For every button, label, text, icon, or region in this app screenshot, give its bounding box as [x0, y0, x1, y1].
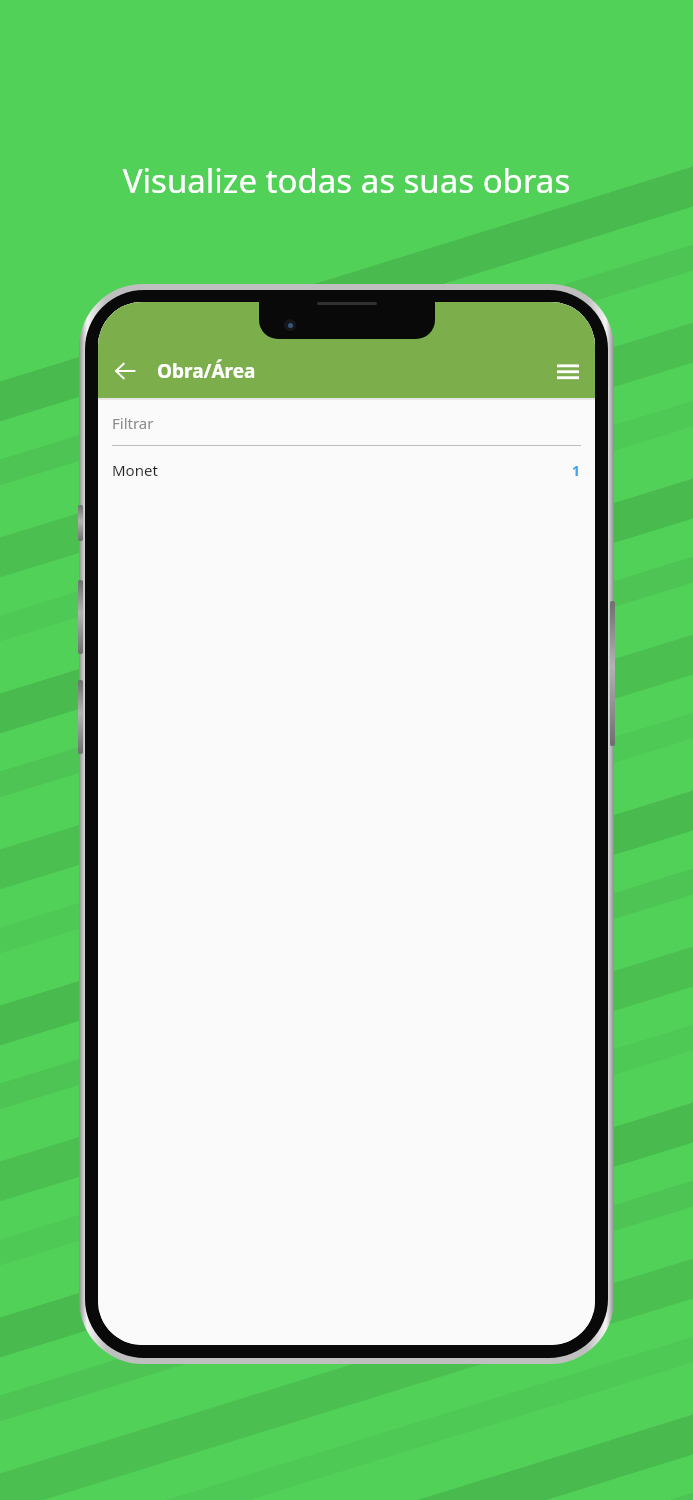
button[interactable]: Filtrar: [112, 400, 581, 445]
button[interactable]: Back: [98, 344, 152, 398]
staticText: Obra/Área: [157, 358, 256, 384]
staticText: Visualize todas as suas obras: [20, 158, 673, 203]
button[interactable]: Menu: [541, 344, 595, 398]
staticText: Monet: [112, 460, 158, 480]
staticText: 1: [572, 461, 581, 480]
staticText: Filtrar: [112, 413, 154, 433]
button[interactable]: Monet: [98, 446, 595, 494]
